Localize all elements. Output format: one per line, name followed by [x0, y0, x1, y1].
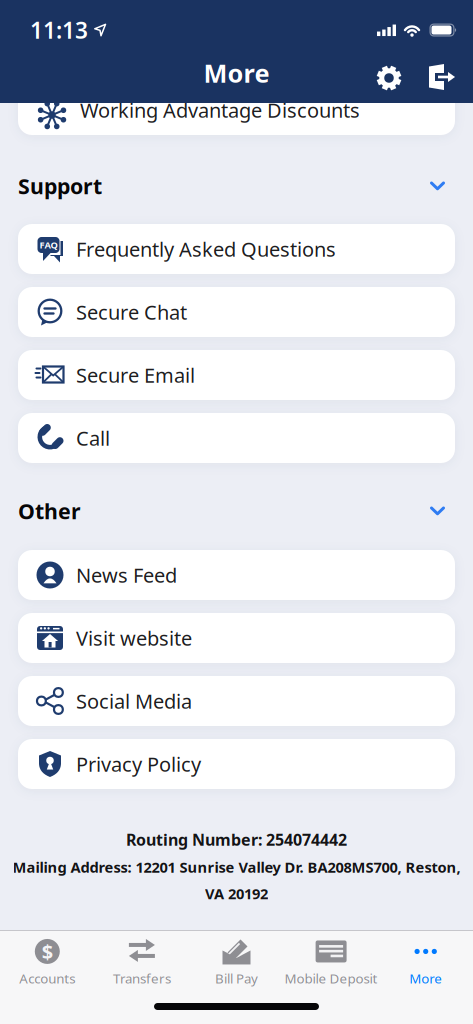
staticText: Transfers	[113, 969, 171, 987]
button[interactable]: $	[0, 936, 95, 990]
button[interactable]: News Feed	[18, 550, 455, 600]
staticText: FAQ	[39, 239, 57, 251]
staticText: Working Advantage Discounts	[80, 97, 360, 123]
button[interactable]: Social Media	[18, 676, 455, 726]
button[interactable]: Privacy Policy	[18, 739, 455, 789]
staticText: Other	[18, 497, 81, 525]
button[interactable]	[427, 60, 456, 86]
staticText: Frequently Asked Questions	[76, 236, 336, 262]
staticText: Visit website	[76, 625, 192, 651]
button[interactable]: Other	[18, 500, 455, 522]
button[interactable]: Transfers	[95, 936, 189, 990]
staticText: Mobile Deposit	[285, 969, 378, 987]
button[interactable]: Visit website	[18, 613, 455, 663]
staticText: Mailing Address: 12201 Sunrise Valley Dr…	[12, 857, 460, 877]
staticText: Bill Pay	[215, 969, 258, 987]
staticText: Call	[76, 425, 110, 451]
button[interactable]: Mobile Deposit	[284, 936, 378, 990]
staticText: Social Media	[76, 688, 192, 714]
staticText: Secure Chat	[76, 299, 187, 325]
staticText: $	[42, 938, 53, 965]
button[interactable]: Call	[18, 413, 455, 463]
button[interactable]: Secure Chat	[18, 287, 455, 337]
staticText: Secure Email	[76, 362, 195, 388]
staticText: VA 20192	[205, 884, 268, 903]
staticText: Privacy Policy	[76, 751, 201, 777]
staticText: Accounts	[19, 969, 75, 987]
staticText: More	[203, 56, 269, 90]
button[interactable]: Working Advantage Discounts	[18, 85, 455, 135]
button[interactable]: FAQ	[18, 224, 455, 274]
button[interactable]: Bill Pay	[189, 936, 284, 990]
button[interactable]: Secure Email	[18, 350, 455, 400]
staticText: Support	[18, 172, 102, 200]
button[interactable]: Support	[18, 175, 455, 197]
button[interactable]	[376, 60, 402, 86]
staticText: News Feed	[76, 562, 177, 588]
staticText: More	[409, 969, 442, 987]
staticText: Routing Number: 254074442	[126, 829, 347, 850]
staticText: 11:13	[30, 15, 88, 45]
button[interactable]: More	[378, 936, 473, 990]
